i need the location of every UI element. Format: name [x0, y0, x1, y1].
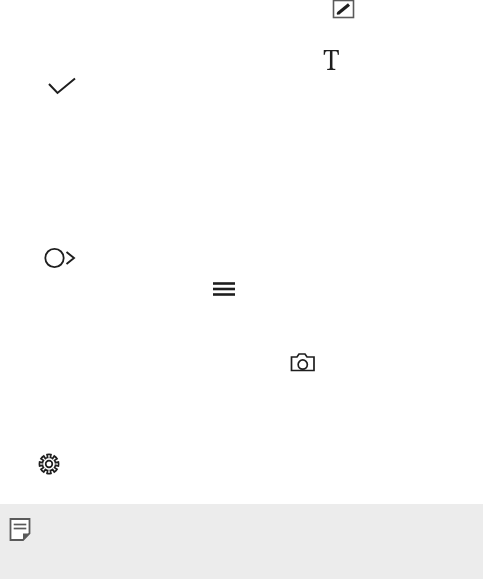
button[interactable]: Edit — [332, 0, 356, 21]
button[interactable]: Notes — [6, 515, 34, 545]
button[interactable]: Next — [42, 245, 84, 271]
button[interactable]: Camera — [288, 350, 318, 376]
staticText: T — [323, 41, 340, 71]
button[interactable]: Text — [320, 40, 346, 70]
button[interactable]: Menu — [209, 277, 239, 299]
button[interactable]: Settings — [36, 451, 64, 477]
button[interactable]: Done — [44, 73, 80, 99]
